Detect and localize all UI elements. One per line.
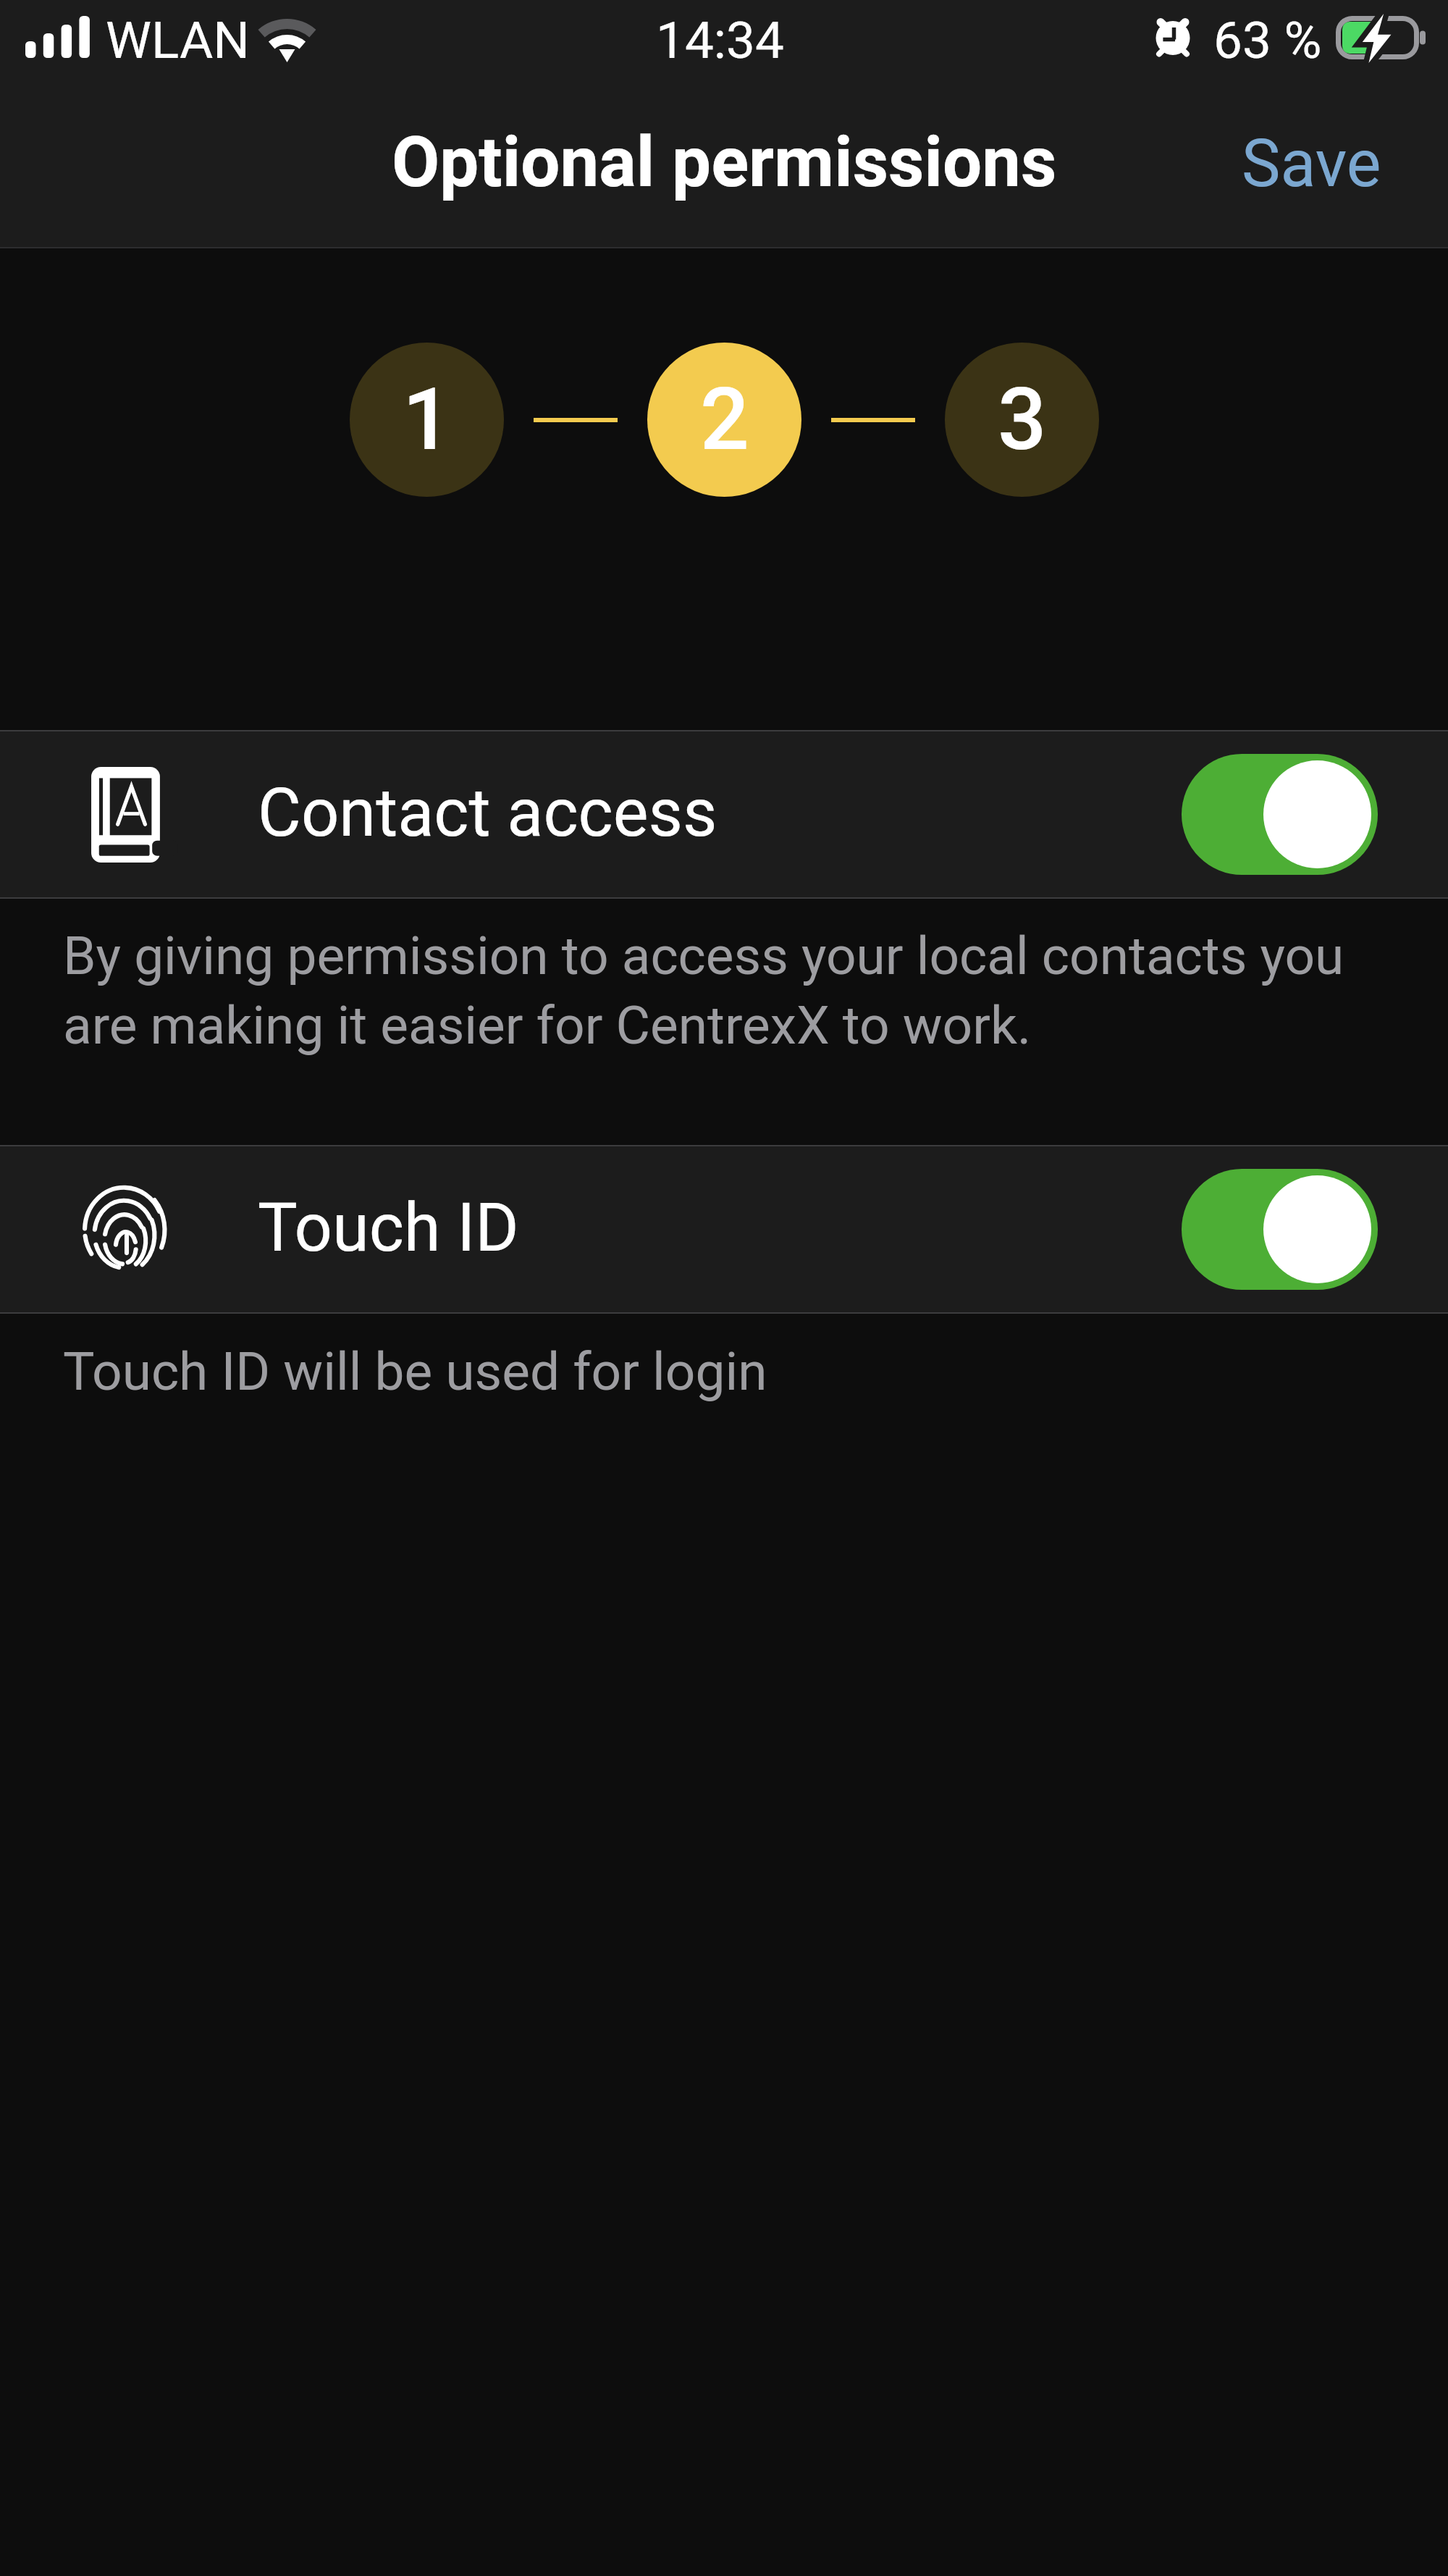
button[interactable]: 1: [350, 343, 504, 497]
staticText: Optional permissions: [392, 122, 1057, 204]
staticText: 14:34: [656, 10, 784, 70]
staticText: 2: [700, 369, 749, 470]
button[interactable]: 3: [945, 343, 1099, 497]
staticText: By giving permission to access your loca…: [63, 925, 1359, 1057]
button[interactable]: Toggle setting: [1182, 754, 1378, 875]
staticText: 1: [403, 369, 452, 470]
staticText: Contact access: [258, 774, 717, 852]
staticText: 3: [998, 369, 1047, 470]
staticText: Touch ID: [258, 1189, 519, 1267]
button[interactable]: Touch ID: [0, 1146, 1448, 1312]
button[interactable]: Save: [1205, 97, 1448, 231]
staticText: 63 %: [1213, 10, 1322, 70]
staticText: Save: [1242, 126, 1381, 202]
button[interactable]: 2: [647, 343, 801, 497]
staticText: WLAN: [106, 10, 250, 70]
staticText: Touch ID will be used for login: [63, 1341, 1359, 1403]
button[interactable]: Toggle setting: [1182, 1169, 1378, 1290]
button[interactable]: Contact access: [0, 731, 1448, 897]
